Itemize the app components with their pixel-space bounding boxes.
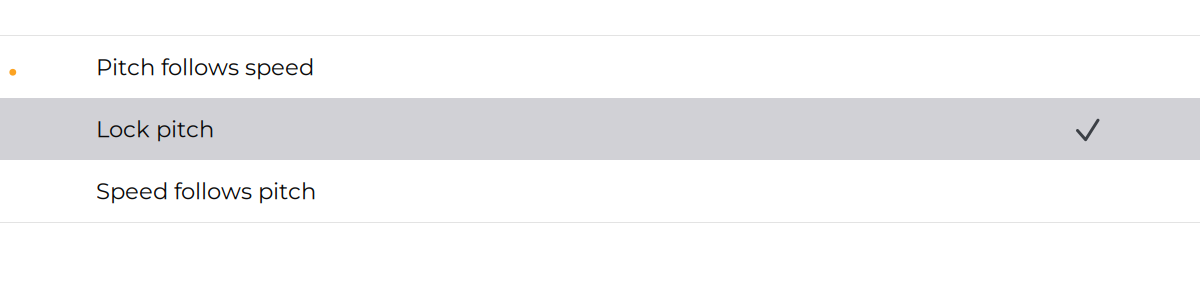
button[interactable]: Lock pitch — [0, 98, 1200, 160]
button[interactable]: Speed follows pitch — [0, 160, 1200, 222]
staticText: Speed follows pitch — [96, 177, 316, 205]
staticText: Lock pitch — [96, 115, 214, 143]
button[interactable]: Pitch follows speed — [0, 36, 1200, 98]
staticText: Pitch follows speed — [96, 53, 314, 81]
